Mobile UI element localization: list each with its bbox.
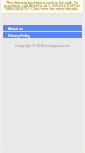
staticText: purchase, call Afternic at 1-339-222-514… [1,3,83,8]
button[interactable]: Privacy Policy [3,32,82,38]
button[interactable]: Chat [0,149,4,153]
staticText: About us [8,26,23,31]
staticText: The domain betelgeux.com is for sale. To [1,0,83,5]
button[interactable]: Scroll to top [82,149,85,153]
staticText: Privacy Policy [8,33,31,38]
staticText: 888-638-6731. Click here for more detail… [1,6,83,11]
button[interactable]: The domain betelgeux.com is for sale. To [1,0,83,14]
button[interactable]: About us [3,25,82,31]
staticText: Copyright © 2018 betelgeux.com [3,43,82,48]
